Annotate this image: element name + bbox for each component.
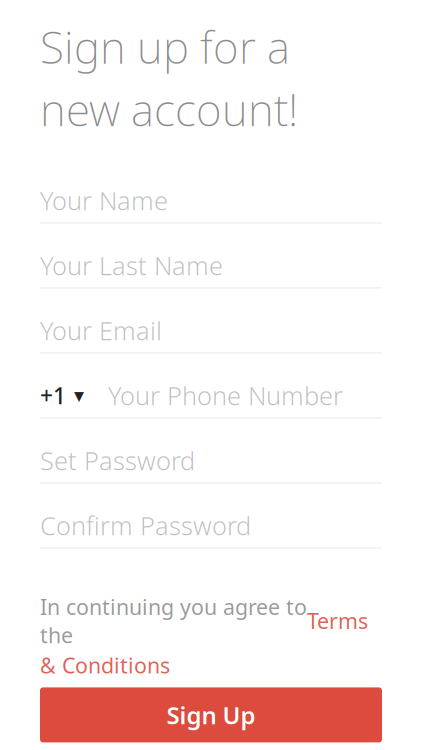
staticText: Your Email	[40, 314, 162, 347]
staticText: new account!	[40, 80, 298, 138]
staticText: Sign up for a	[40, 18, 290, 76]
staticText: Confirm Password	[40, 509, 251, 542]
button[interactable]: & Conditions	[40, 651, 170, 679]
button[interactable]: Sign Up	[40, 687, 382, 742]
staticText: Sign Up	[166, 699, 255, 731]
staticText: & Conditions	[40, 651, 170, 679]
staticText: Set Password	[40, 444, 195, 477]
staticText: Your Name	[40, 184, 168, 217]
staticText: Your Phone Number	[108, 379, 343, 412]
staticText: ▾	[74, 384, 84, 407]
staticText: In continuing you agree to the	[40, 592, 307, 649]
staticText: Your Last Name	[40, 249, 223, 282]
button[interactable]: Terms	[307, 607, 368, 635]
staticText: Terms	[307, 607, 368, 635]
staticText: +1	[40, 380, 66, 410]
